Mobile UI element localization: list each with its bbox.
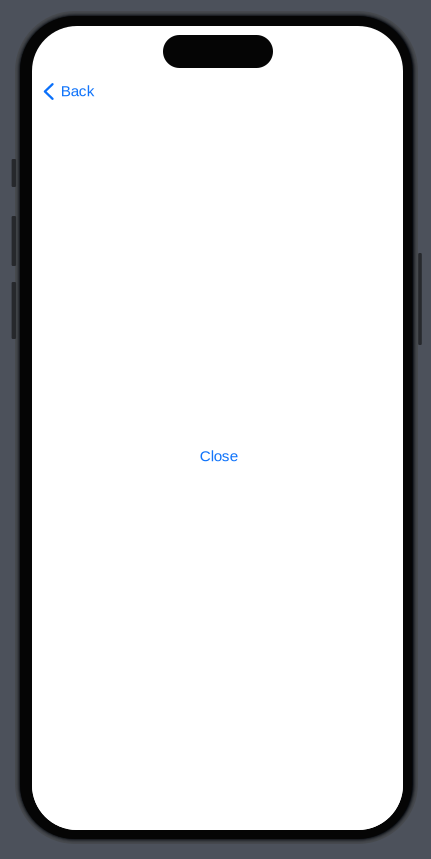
button[interactable]: Back xyxy=(32,75,105,107)
staticText: Close xyxy=(200,447,238,464)
staticText: Back xyxy=(61,82,95,99)
button[interactable]: Close xyxy=(177,435,261,477)
